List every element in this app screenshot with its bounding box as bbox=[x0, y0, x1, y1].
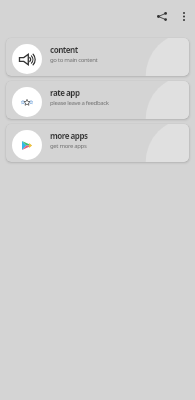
staticText: more apps bbox=[50, 130, 88, 141]
staticText: rate app bbox=[50, 87, 80, 98]
button[interactable]: rate app bbox=[6, 81, 189, 119]
staticText: go to main content bbox=[50, 56, 98, 64]
staticText: content bbox=[50, 44, 78, 55]
button[interactable]: Share bbox=[151, 2, 173, 30]
button[interactable]: content bbox=[6, 38, 189, 76]
staticText: please leave a feedback bbox=[50, 99, 109, 107]
button[interactable]: More options bbox=[173, 2, 194, 30]
staticText: get more apps bbox=[50, 142, 87, 150]
button[interactable]: more apps bbox=[6, 124, 189, 162]
